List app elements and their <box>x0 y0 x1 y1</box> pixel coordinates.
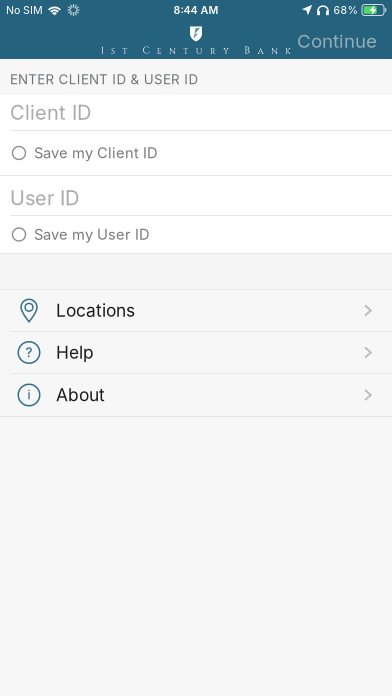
staticText: T <box>122 46 127 57</box>
staticText: E <box>157 46 162 57</box>
staticText: Save my Client ID <box>34 144 158 162</box>
staticText: 8:44 AM <box>173 4 218 16</box>
staticText: User ID <box>10 186 79 210</box>
button[interactable]: ? <box>0 332 392 373</box>
staticText: About <box>56 385 105 405</box>
staticText: U <box>196 46 203 57</box>
staticText: Help <box>56 342 94 363</box>
staticText: Continue <box>297 30 377 52</box>
staticText: i <box>27 388 30 402</box>
staticText: No SIM <box>6 4 43 16</box>
staticText: K <box>285 46 291 57</box>
staticText: A <box>258 46 264 57</box>
button[interactable]: Save my Client ID <box>0 144 392 162</box>
staticText: T <box>183 46 188 57</box>
button[interactable]: Locations <box>0 290 392 331</box>
button[interactable]: Continue <box>297 28 392 50</box>
staticText: Client ID <box>10 101 91 124</box>
button[interactable]: i <box>0 374 392 416</box>
staticText: Y <box>223 46 229 57</box>
staticText: R <box>210 46 216 57</box>
staticText: C <box>142 44 149 57</box>
button[interactable]: Save my User ID <box>0 226 392 243</box>
staticText: 68% <box>333 4 357 16</box>
staticText: ENTER CLIENT ID & USER ID <box>10 72 198 87</box>
staticText: Save my User ID <box>34 226 150 243</box>
staticText: B <box>244 44 250 57</box>
staticText: S <box>111 46 115 57</box>
staticText: N <box>271 46 278 57</box>
staticText: N <box>169 46 176 57</box>
staticText: 1 <box>101 44 104 57</box>
staticText: ? <box>25 345 32 360</box>
staticText: Locations <box>56 300 135 321</box>
